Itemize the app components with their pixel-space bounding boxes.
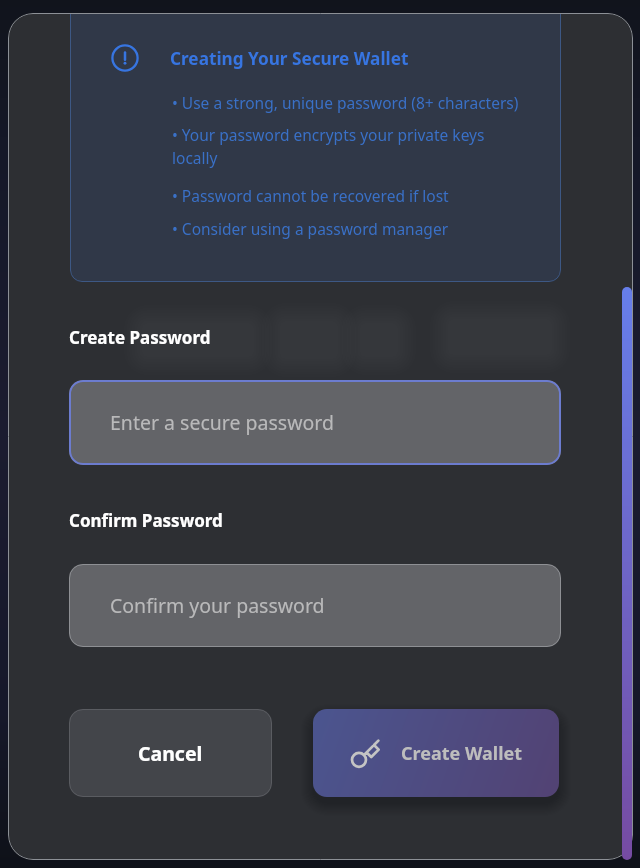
staticText: • Your password encrypts your private ke…: [172, 124, 524, 169]
staticText: • Password cannot be recovered if lost: [172, 185, 449, 206]
other: Information: [111, 44, 139, 72]
staticText: • Consider using a password manager: [172, 218, 449, 239]
button[interactable]: Confirm your password: [69, 564, 561, 647]
button[interactable]: Enter a secure password: [69, 380, 561, 465]
staticText: Creating Your Secure Wallet: [170, 47, 409, 70]
button[interactable]: Key: [313, 709, 559, 797]
staticText: Enter a secure password: [110, 409, 334, 436]
staticText: Confirm Password: [69, 509, 223, 532]
other: Key: [350, 738, 381, 769]
staticText: Create Password: [69, 326, 211, 349]
staticText: Cancel: [138, 740, 203, 767]
button[interactable]: Cancel: [69, 709, 272, 797]
staticText: Create Wallet: [401, 741, 523, 766]
staticText: • Use a strong, unique password (8+ char…: [172, 92, 519, 113]
staticText: Confirm your password: [110, 592, 325, 619]
